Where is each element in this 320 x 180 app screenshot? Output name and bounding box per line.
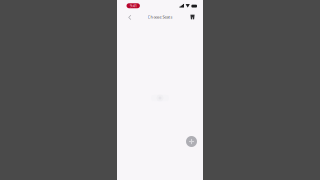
- button[interactable]: Add: [185, 135, 198, 148]
- button[interactable]: Cart: [186, 11, 199, 22]
- staticText: 9:41: [130, 3, 137, 8]
- button[interactable]: Back: [123, 11, 136, 22]
- staticText: Choose Seats: [147, 14, 172, 20]
